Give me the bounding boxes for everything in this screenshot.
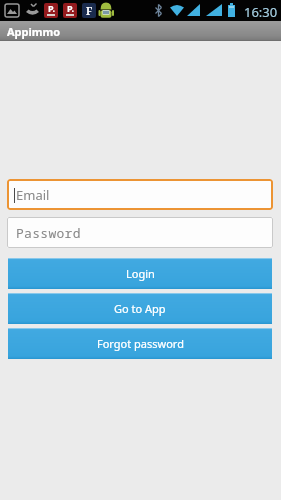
staticText: P. — [48, 3, 55, 14]
staticText: Login — [126, 266, 155, 281]
staticText: Appimmo — [7, 24, 61, 39]
staticText: Email — [16, 186, 50, 204]
staticText: F — [86, 4, 93, 18]
button[interactable]: Go to App — [8, 293, 272, 324]
button[interactable]: Login — [8, 258, 272, 289]
staticText: 16:30 — [244, 3, 278, 21]
staticText: Forgot password — [97, 336, 184, 351]
button[interactable]: Forgot password — [8, 328, 272, 359]
staticText: P. — [67, 3, 74, 14]
staticText: Password — [16, 224, 81, 242]
button[interactable]: Password — [7, 217, 273, 248]
button[interactable]: Email — [7, 179, 273, 210]
staticText: Go to App — [114, 301, 166, 316]
